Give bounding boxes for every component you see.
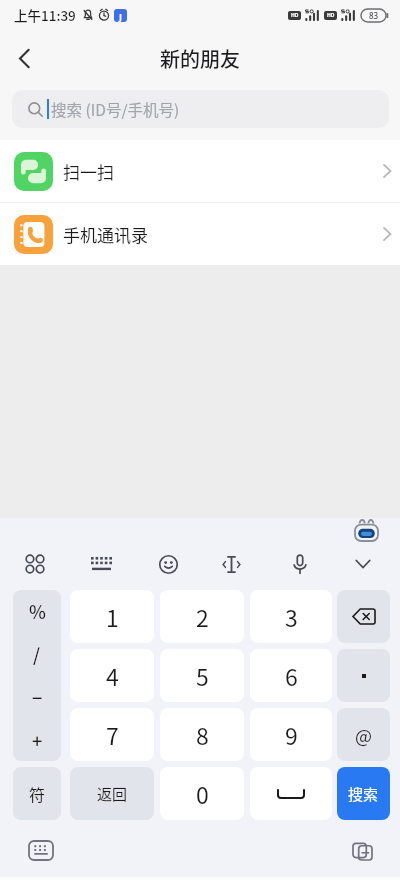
button[interactable]: 符 [13,767,61,820]
staticText: / [33,641,41,667]
staticText: 7 [106,718,119,751]
staticText: % [29,598,46,624]
staticText: 0 [196,777,209,810]
staticText: HD [327,12,335,19]
staticText: 扫一扫 [63,159,114,184]
button[interactable]: 搜索 (ID号/手机号) [12,90,389,128]
button[interactable] [21,836,61,864]
button[interactable]: 4 [70,649,154,702]
staticText: 搜索 (ID号/手机号) [51,98,180,120]
button[interactable] [8,42,40,74]
staticText: 搜索 [348,783,379,805]
button[interactable]: 9 [250,708,332,761]
button[interactable]: 手机通讯录 [0,203,400,265]
button[interactable] [250,767,332,820]
button[interactable]: 0 [160,767,244,820]
button[interactable] [337,649,390,702]
staticText: 2 [196,600,209,633]
staticText: − [32,684,43,710]
staticText: @ [355,722,373,748]
staticText: 6 [285,659,298,692]
button[interactable] [213,548,249,580]
button[interactable]: 8 [160,708,244,761]
button[interactable]: 搜索 [337,767,390,820]
staticText: HD [291,12,299,19]
staticText: 8 [196,718,209,751]
button[interactable]: 3 [250,590,332,643]
button[interactable] [342,836,382,864]
button[interactable]: 扫一扫 [0,140,400,202]
staticText: 3 [285,600,298,633]
staticText: + [32,727,43,753]
button[interactable]: 5 [160,649,244,702]
button[interactable]: % [13,590,61,761]
staticText: 新的朋友 [160,44,240,73]
button[interactable] [150,548,186,580]
staticText: 手机通讯录 [63,222,148,247]
staticText: 9 [285,718,298,751]
button[interactable]: 1 [70,590,154,643]
button[interactable] [83,548,119,580]
button[interactable]: 2 [160,590,244,643]
staticText: 上午11:39 [14,5,76,25]
button[interactable] [352,518,380,543]
staticText: 83 [369,10,379,21]
staticText: J [119,10,122,22]
button[interactable] [337,590,390,643]
button[interactable]: @ [337,708,390,761]
staticText: 4 [106,659,119,692]
button[interactable] [345,548,381,580]
button[interactable]: 6 [250,649,332,702]
staticText: 返回 [97,783,128,805]
staticText: 1 [106,600,119,633]
staticText: 符 [29,782,46,805]
staticText: 5 [196,659,209,692]
button[interactable] [17,548,53,580]
button[interactable] [282,548,318,580]
button[interactable]: 返回 [70,767,154,820]
button[interactable]: 7 [70,708,154,761]
